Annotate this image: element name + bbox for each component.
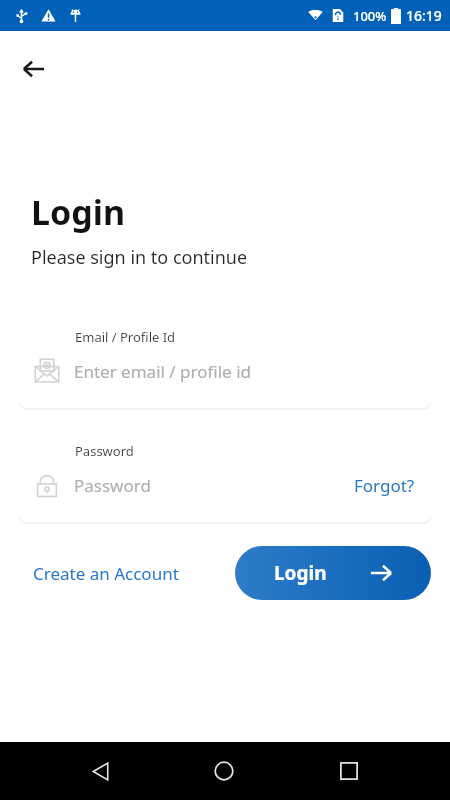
staticText: Enter email / profile id [74,360,251,383]
staticText: 16:19 [406,6,442,25]
button[interactable]: Forgot? [352,470,417,501]
staticText: Forgot? [354,474,415,497]
staticText: Password [75,442,134,460]
button[interactable]: Email / Profile Id [19,314,431,408]
staticText: Login [31,189,126,235]
button[interactable]: Create an Account [31,554,181,593]
button[interactable]: Home [200,747,248,795]
staticText: Email / Profile Id [75,328,176,346]
staticText: Create an Account [33,562,179,585]
button[interactable]: Login [235,546,431,600]
staticText: Please sign in to continue [31,245,248,270]
staticText: 100% [353,7,387,25]
button[interactable]: Back [10,45,58,93]
button[interactable]: Password [19,428,431,522]
button[interactable]: Recents [325,747,373,795]
staticText: Password [74,474,151,497]
staticText: Login [274,560,327,586]
button[interactable]: Back [76,747,124,795]
